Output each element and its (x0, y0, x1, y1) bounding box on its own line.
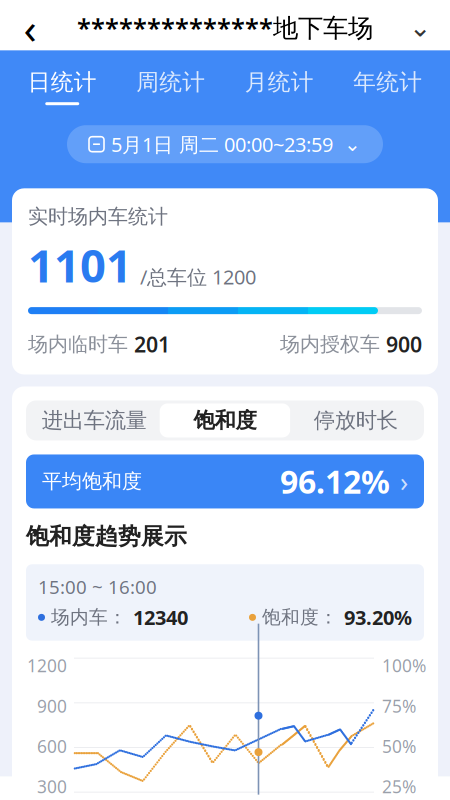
staticText: 场内车： (51, 606, 127, 629)
staticText: 96.12% (280, 460, 390, 503)
staticText: 600 (37, 735, 67, 758)
staticText: ⌄ (409, 12, 431, 42)
staticText: 月统计 (245, 68, 314, 96)
staticText: 900 (386, 330, 422, 358)
staticText: 15:00 ~ 16:00 (38, 574, 157, 599)
staticText: 5月1日 周二 00:00~23:59 (111, 131, 333, 157)
staticText: 1101 (28, 235, 132, 295)
staticText: 1200 (27, 654, 67, 677)
button[interactable]: 月统计 (225, 62, 333, 111)
staticText: 93.20% (344, 604, 412, 631)
button[interactable]: 5月1日 周二 00:00~23:59 (67, 125, 383, 163)
staticText: 日统计 (28, 68, 97, 96)
button[interactable]: 年统计 (333, 62, 442, 111)
staticText: ‹ (23, 0, 36, 56)
button[interactable]: Back (8, 5, 52, 49)
button[interactable]: 饱和度 (160, 403, 290, 437)
staticText: 饱和度： (262, 606, 338, 629)
staticText: 300 (37, 775, 67, 798)
staticText: **************地下车场 (77, 10, 373, 44)
button[interactable]: 周统计 (116, 62, 225, 111)
staticText: 900 (37, 694, 67, 717)
button[interactable]: 平均饱和度 (26, 454, 424, 508)
staticText: ⌄ (344, 133, 361, 155)
button[interactable]: 进出车流量 (29, 403, 160, 437)
staticText: 场内授权车 (280, 332, 380, 357)
button[interactable]: 停放时长 (290, 403, 421, 437)
staticText: 50% (382, 735, 416, 758)
staticText: 平均饱和度 (42, 469, 142, 494)
staticText: 周统计 (136, 68, 205, 96)
staticText: 12340 (133, 604, 188, 631)
staticText: 100% (382, 654, 426, 677)
button[interactable]: 日统计 (8, 62, 116, 111)
staticText: › (400, 464, 408, 499)
staticText: 饱和度 (193, 407, 256, 434)
staticText: 201 (134, 330, 170, 358)
staticText: 饱和度趋势展示 (26, 522, 187, 550)
button[interactable]: More parking lots (398, 5, 442, 49)
staticText: 年统计 (353, 68, 422, 96)
staticText: 75% (382, 694, 416, 717)
staticText: 场内临时车 (28, 332, 128, 357)
staticText: 实时场内车统计 (28, 204, 168, 229)
staticText: /总车位 1200 (140, 264, 256, 290)
staticText: 25% (382, 775, 416, 798)
staticText: 停放时长 (314, 407, 398, 434)
staticText: 进出车流量 (42, 407, 147, 434)
